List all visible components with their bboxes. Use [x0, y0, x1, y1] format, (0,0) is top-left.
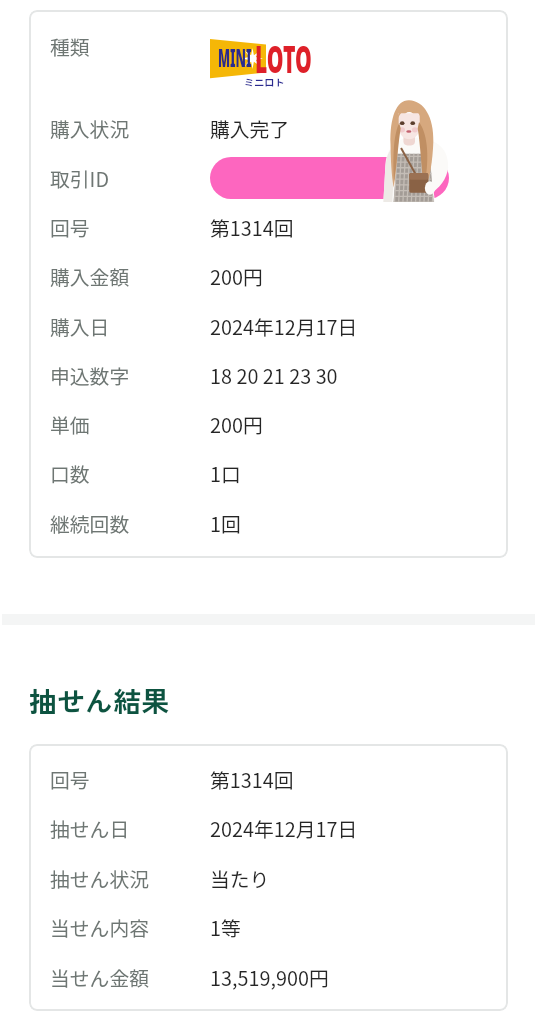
staticText: 申込数字 [50, 361, 130, 390]
staticText: 13,519,900円 [210, 963, 329, 992]
staticText: 単価 [50, 410, 90, 439]
staticText: 取引ID [50, 164, 110, 193]
other: アバター [382, 96, 450, 200]
staticText: 1回 [210, 509, 241, 538]
button[interactable]: 購入明細 [29, 10, 508, 558]
staticText: 当たり [210, 864, 270, 893]
staticText: 18 20 21 23 30 [210, 361, 338, 390]
staticText: 種類 [50, 32, 90, 61]
staticText: 抽せん状況 [50, 864, 149, 893]
staticText: 200円 [210, 262, 263, 291]
staticText: 口数 [50, 459, 90, 488]
other: ミニロト [210, 38, 312, 90]
staticText: 200円 [210, 410, 263, 439]
staticText: 回号 [50, 213, 90, 242]
staticText: 抽せん結果 [29, 680, 170, 721]
staticText: 購入金額 [50, 262, 130, 291]
staticText: 回号 [50, 765, 90, 794]
staticText: 購入状況 [50, 114, 130, 143]
staticText: 2024年12月17日 [210, 814, 358, 843]
staticText: 第1314回 [210, 213, 294, 242]
staticText: LOTO [255, 33, 312, 83]
staticText: 購入日 [50, 312, 110, 341]
staticText: 1等 [210, 913, 241, 942]
staticText: 継続回数 [50, 509, 130, 538]
staticText: 当せん金額 [50, 963, 149, 992]
staticText: 購入完了 [210, 114, 290, 143]
staticText: 2024年12月17日 [210, 312, 358, 341]
staticText: 当せん内容 [50, 913, 149, 942]
button[interactable]: 抽せん結果明細 [29, 744, 508, 1011]
staticText: ミニロト [244, 76, 285, 89]
staticText: 第1314回 [210, 765, 294, 794]
staticText: 抽せん日 [50, 814, 130, 843]
staticText: 1口 [210, 459, 241, 488]
staticText: MINI [218, 40, 252, 74]
